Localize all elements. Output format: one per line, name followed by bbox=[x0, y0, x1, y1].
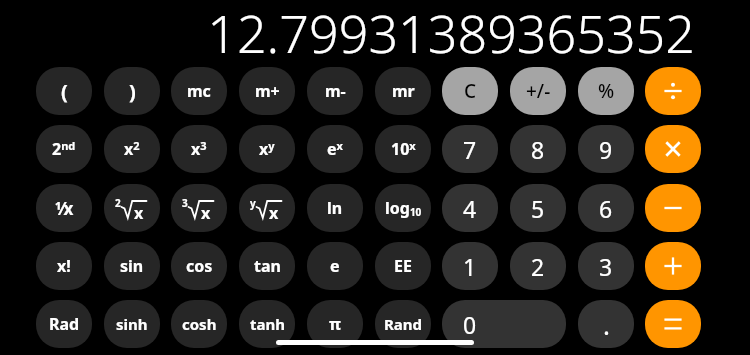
staticText: 5 bbox=[531, 193, 545, 224]
button[interactable]: Rand bbox=[375, 300, 431, 348]
staticText: ln bbox=[327, 197, 343, 219]
button[interactable]: root 2 of x bbox=[104, 184, 160, 232]
staticText: y bbox=[250, 196, 256, 210]
staticText: π bbox=[329, 313, 341, 335]
staticText: 3 bbox=[182, 196, 188, 210]
button[interactable]: +/- bbox=[510, 67, 566, 115]
button[interactable]: m- bbox=[307, 67, 363, 115]
staticText: cosh bbox=[182, 314, 217, 334]
button[interactable]: ln bbox=[307, 184, 363, 232]
button[interactable]: % bbox=[578, 67, 634, 115]
button[interactable]: 5 bbox=[510, 184, 566, 232]
button[interactable]: 9 bbox=[578, 125, 634, 173]
staticText: sin bbox=[120, 255, 144, 277]
button[interactable]: EE bbox=[375, 242, 431, 290]
staticText: 1 bbox=[463, 251, 477, 282]
staticText: 9 bbox=[599, 134, 613, 165]
staticText: e bbox=[330, 255, 340, 277]
staticText: Rand bbox=[384, 314, 423, 334]
button[interactable]: Divide bbox=[645, 67, 701, 115]
staticText: ) bbox=[129, 78, 136, 105]
staticText: 3 bbox=[599, 251, 613, 282]
button[interactable]: 0 bbox=[442, 300, 566, 348]
staticText: . bbox=[603, 307, 610, 342]
staticText: C bbox=[464, 78, 477, 104]
staticText: sinh bbox=[116, 314, 148, 334]
staticText: ( bbox=[61, 78, 68, 105]
button[interactable]: Minus bbox=[645, 184, 701, 232]
button[interactable]: x! bbox=[36, 242, 92, 290]
staticText: 8 bbox=[531, 134, 545, 165]
staticText: mc bbox=[187, 80, 211, 102]
staticText: EE bbox=[394, 255, 412, 277]
staticText: x bbox=[201, 202, 211, 224]
staticText: m+ bbox=[255, 80, 280, 102]
staticText: tan bbox=[254, 255, 281, 277]
button[interactable]: log10 bbox=[375, 184, 431, 232]
button[interactable]: C bbox=[442, 67, 498, 115]
button[interactable]: x3 bbox=[171, 125, 227, 173]
button[interactable]: xy bbox=[239, 125, 295, 173]
button[interactable]: 8 bbox=[510, 125, 566, 173]
button[interactable]: 4 bbox=[442, 184, 498, 232]
button[interactable]: cos bbox=[171, 242, 227, 290]
staticText: ⅟x bbox=[55, 197, 74, 220]
staticText: x bbox=[134, 202, 144, 224]
staticText: x! bbox=[57, 255, 71, 277]
button[interactable]: 3 bbox=[578, 242, 634, 290]
button[interactable]: mc bbox=[171, 67, 227, 115]
button[interactable]: 7 bbox=[442, 125, 498, 173]
button[interactable]: Plus bbox=[645, 242, 701, 290]
button[interactable]: tanh bbox=[239, 300, 295, 348]
button[interactable]: Equals bbox=[645, 300, 701, 348]
button[interactable]: ) bbox=[104, 67, 160, 115]
staticText: 6 bbox=[599, 193, 613, 224]
button[interactable]: sin bbox=[104, 242, 160, 290]
button[interactable]: Rad bbox=[36, 300, 92, 348]
button[interactable]: sinh bbox=[104, 300, 160, 348]
button[interactable]: 10x bbox=[375, 125, 431, 173]
staticText: Rad bbox=[49, 313, 80, 335]
button[interactable]: tan bbox=[239, 242, 295, 290]
staticText: 2 bbox=[531, 251, 545, 282]
button[interactable]: 1/x bbox=[36, 184, 92, 232]
button[interactable]: π bbox=[307, 300, 363, 348]
staticText: ex bbox=[327, 138, 343, 160]
button[interactable]: mr bbox=[375, 67, 431, 115]
staticText: log10 bbox=[385, 197, 422, 219]
staticText: 10x bbox=[391, 138, 416, 160]
staticText: x bbox=[269, 202, 279, 224]
staticText: tanh bbox=[250, 314, 285, 334]
button[interactable]: . bbox=[578, 300, 634, 348]
staticText: m- bbox=[325, 80, 346, 102]
staticText: 2nd bbox=[52, 138, 76, 160]
staticText: 0 bbox=[463, 309, 477, 340]
staticText: % bbox=[598, 78, 615, 104]
staticText: cos bbox=[186, 255, 213, 277]
button[interactable]: 2nd bbox=[36, 125, 92, 173]
staticText: x3 bbox=[191, 138, 207, 160]
button[interactable]: Multiply bbox=[645, 125, 701, 173]
button[interactable]: cosh bbox=[171, 300, 227, 348]
button[interactable]: 2 bbox=[510, 242, 566, 290]
button[interactable]: ( bbox=[36, 67, 92, 115]
staticText: x2 bbox=[124, 138, 140, 160]
button[interactable]: root 3 of x bbox=[171, 184, 227, 232]
button[interactable]: 1 bbox=[442, 242, 498, 290]
staticText: xy bbox=[259, 138, 275, 160]
staticText: +/- bbox=[526, 78, 551, 104]
button[interactable]: 6 bbox=[578, 184, 634, 232]
staticText: mr bbox=[392, 80, 415, 102]
button[interactable]: m+ bbox=[239, 67, 295, 115]
staticText: 2 bbox=[115, 196, 121, 210]
button[interactable]: root y of x bbox=[239, 184, 295, 232]
button[interactable]: ex bbox=[307, 125, 363, 173]
staticText: 7 bbox=[463, 134, 477, 165]
staticText: 12.79931389365352 bbox=[200, 0, 695, 59]
button[interactable]: e bbox=[307, 242, 363, 290]
staticText: 4 bbox=[463, 193, 477, 224]
button[interactable]: x2 bbox=[104, 125, 160, 173]
